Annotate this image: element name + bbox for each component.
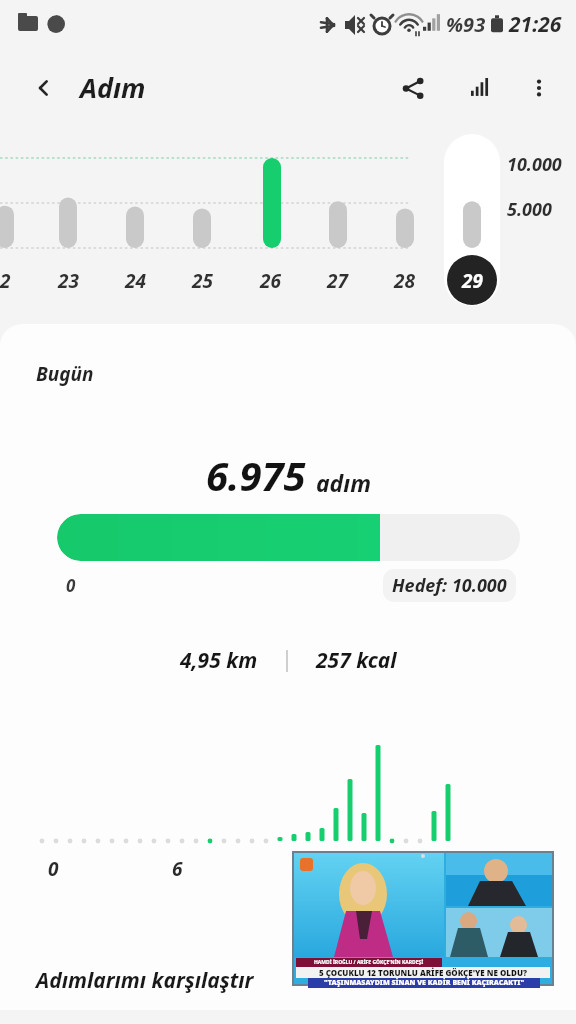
button[interactable]: Statistics xyxy=(458,65,504,111)
button[interactable]: 24 xyxy=(113,266,157,296)
button[interactable]: Share xyxy=(390,65,436,111)
button[interactable]: 29 xyxy=(450,266,494,296)
staticText: 5.000 xyxy=(507,197,552,222)
button[interactable]: 23 xyxy=(46,266,90,296)
staticText: 4,95 km xyxy=(180,646,258,675)
staticText: 21:26 xyxy=(509,10,562,39)
staticText: 25 xyxy=(192,268,213,294)
staticText: 26 xyxy=(260,268,281,294)
staticText: %93 xyxy=(446,11,486,38)
staticText: Hedef: 10.000 xyxy=(392,573,507,598)
button[interactable]: 26 xyxy=(248,266,292,296)
button[interactable]: More options xyxy=(516,65,562,111)
staticText: 2 xyxy=(0,268,11,294)
button[interactable]: 28 xyxy=(382,266,426,296)
button[interactable] xyxy=(57,514,520,561)
button[interactable]: Hedef: 10.000 xyxy=(392,573,507,598)
button[interactable]: Back xyxy=(24,68,64,108)
button[interactable]: 25 xyxy=(180,266,224,296)
staticText: 5 ÇOCUKLU 12 TORUNLU ARİFE GÖKÇE'YE NE O… xyxy=(319,967,527,978)
staticText: adım xyxy=(316,467,371,498)
button[interactable]: 2 xyxy=(0,266,27,296)
staticText: 28 xyxy=(394,268,415,294)
staticText: 6 xyxy=(172,856,183,882)
staticText: Bugün xyxy=(36,361,94,387)
staticText: "TAŞINMASAYDIM SİNAN VE KADİR BENİ KAÇIR… xyxy=(324,978,525,988)
button[interactable]: HAMDİ İROĞLU / ARİFE GÖKÇE'NİN KARDEŞİ xyxy=(294,853,552,984)
button[interactable]: 27 xyxy=(315,266,359,296)
staticText: 257 kcal xyxy=(316,646,397,675)
staticText: 23 xyxy=(58,268,79,294)
staticText: 29 xyxy=(462,268,483,294)
staticText: 24 xyxy=(125,268,146,294)
staticText: Adım xyxy=(80,69,146,106)
staticText: HAMDİ İROĞLU / ARİFE GÖKÇE'NİN KARDEŞİ xyxy=(314,959,424,966)
staticText: 0 xyxy=(48,856,59,882)
staticText: 6.975 xyxy=(206,448,306,502)
staticText: 0 xyxy=(66,574,76,597)
staticText: 27 xyxy=(327,268,348,294)
button[interactable]: Adımlarımı karşılaştır xyxy=(36,966,254,995)
staticText: 10.000 xyxy=(507,152,562,177)
